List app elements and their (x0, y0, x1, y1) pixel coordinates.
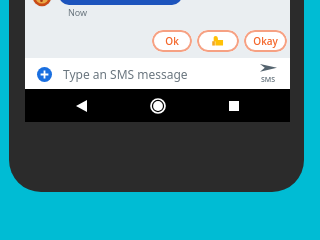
button[interactable]: Okay (244, 30, 287, 52)
button[interactable]: Add attachment (33, 63, 55, 85)
staticText: Ok (165, 34, 179, 48)
button[interactable]: Ok (152, 30, 192, 52)
button[interactable]: Home (145, 93, 171, 119)
staticText: Okay (253, 34, 278, 48)
button[interactable]: Thumbs up (197, 30, 239, 52)
other: Thumbs up (212, 35, 224, 47)
button[interactable]: Back (68, 93, 94, 119)
staticText: SMS (261, 75, 276, 85)
button[interactable]: Send SMS (246, 58, 290, 89)
button[interactable]: Type an SMS message (63, 66, 246, 82)
staticText: Now (68, 6, 88, 18)
button[interactable]: Recent apps (221, 93, 247, 119)
